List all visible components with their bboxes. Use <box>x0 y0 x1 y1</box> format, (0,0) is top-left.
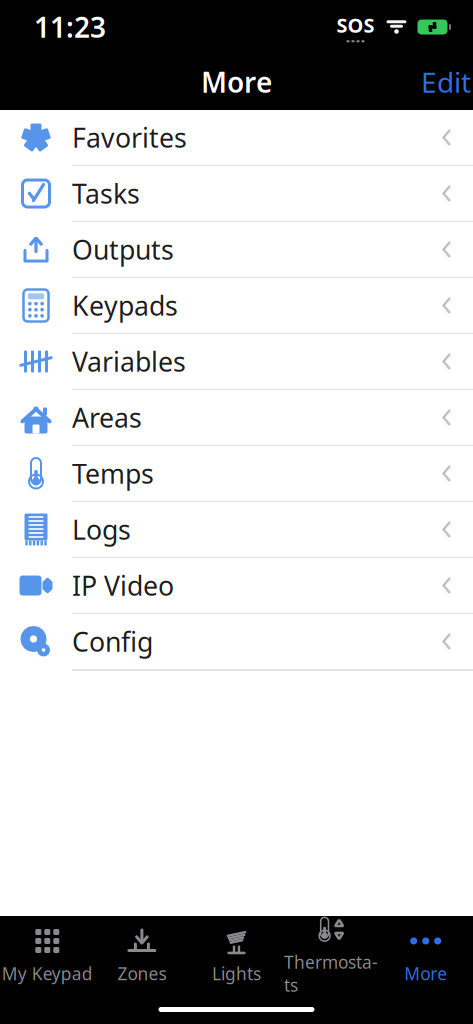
button[interactable]: Thermostats <box>284 916 378 994</box>
button[interactable]: Areas <box>0 390 473 446</box>
staticText: Keypads <box>72 288 178 323</box>
staticText: Areas <box>72 400 142 435</box>
staticText: IP Video <box>72 568 174 603</box>
button[interactable]: Temps <box>0 446 473 502</box>
staticText: More <box>201 63 272 101</box>
staticText: Thermostats <box>284 950 378 996</box>
button[interactable]: My Keypad <box>0 916 95 994</box>
staticText: 11:23 <box>34 8 106 46</box>
button[interactable]: Edit <box>415 55 473 109</box>
staticText: Tasks <box>72 176 140 211</box>
button[interactable]: Zones <box>95 916 189 994</box>
staticText: Outputs <box>72 232 174 267</box>
button[interactable]: Tasks <box>0 166 473 222</box>
button[interactable]: Outputs <box>0 222 473 278</box>
staticText: Edit <box>421 63 471 101</box>
staticText: More <box>404 962 447 985</box>
staticText: Variables <box>72 344 186 379</box>
staticText: Lights <box>212 962 261 985</box>
button[interactable]: Favorites <box>0 110 473 166</box>
button[interactable]: Config <box>0 614 473 670</box>
button[interactable]: Logs <box>0 502 473 558</box>
button[interactable]: Variables <box>0 334 473 390</box>
button[interactable]: IP Video <box>0 558 473 614</box>
staticText: SOS <box>336 12 374 38</box>
staticText: My Keypad <box>2 962 93 985</box>
staticText: Config <box>72 624 153 659</box>
button[interactable]: Keypads <box>0 278 473 334</box>
staticText: Temps <box>72 456 154 491</box>
staticText: Logs <box>72 512 131 547</box>
button[interactable]: More <box>378 916 473 994</box>
staticText: Zones <box>117 962 166 985</box>
button[interactable]: Lights <box>189 916 284 994</box>
staticText: Favorites <box>72 120 187 155</box>
